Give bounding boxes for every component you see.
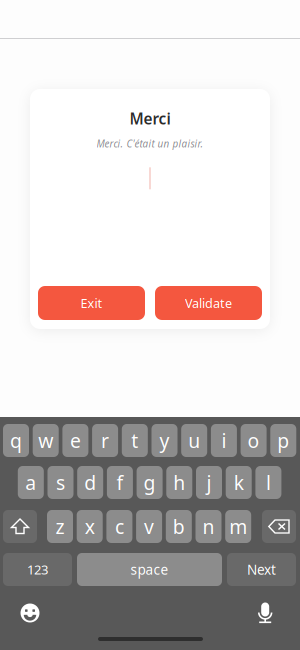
staticText: l <box>266 469 271 496</box>
staticText: 123 <box>27 561 48 578</box>
button[interactable]: Shift <box>3 510 37 543</box>
staticText: e <box>70 427 81 454</box>
button[interactable]: Emoji <box>10 598 50 628</box>
button[interactable]: o <box>241 424 267 457</box>
button[interactable]: t <box>122 424 148 457</box>
button[interactable]: e <box>62 424 88 457</box>
button[interactable]: a <box>18 466 44 499</box>
staticText: u <box>188 427 200 454</box>
button[interactable]: x <box>77 510 103 543</box>
button[interactable]: d <box>77 466 103 499</box>
staticText: k <box>234 469 244 496</box>
staticText: r <box>101 427 109 454</box>
staticText: space <box>130 560 168 579</box>
staticText: n <box>202 513 214 540</box>
button[interactable]: j <box>196 466 222 499</box>
button[interactable]: 123 <box>3 553 72 586</box>
staticText: m <box>229 513 247 540</box>
staticText: i <box>221 427 226 454</box>
button[interactable]: n <box>195 510 221 543</box>
staticText: c <box>115 513 124 540</box>
button[interactable]: p <box>270 424 296 457</box>
button[interactable]: h <box>166 466 192 499</box>
staticText: g <box>144 469 156 496</box>
staticText: Merci <box>129 108 170 129</box>
button[interactable]: Dictate <box>246 598 286 628</box>
button[interactable]: u <box>181 424 207 457</box>
button[interactable]: q <box>3 424 29 457</box>
button[interactable]: Validate <box>155 286 262 320</box>
button[interactable]: c <box>106 510 132 543</box>
staticText: Exit <box>80 294 102 312</box>
button[interactable]: s <box>47 466 73 499</box>
staticText: a <box>25 469 36 496</box>
staticText: Merci. C'était un plaisir. <box>96 137 203 150</box>
staticText: Validate <box>185 294 232 312</box>
button[interactable]: v <box>136 510 162 543</box>
button[interactable]: g <box>137 466 163 499</box>
staticText: d <box>84 469 96 496</box>
button[interactable]: Delete <box>262 510 296 543</box>
staticText: z <box>55 513 64 540</box>
button[interactable]: y <box>151 424 177 457</box>
button[interactable]: r <box>92 424 118 457</box>
staticText: q <box>10 427 22 454</box>
button[interactable]: Exit <box>38 286 145 320</box>
button[interactable]: i <box>211 424 237 457</box>
staticText: b <box>173 513 185 540</box>
staticText: x <box>85 513 95 540</box>
staticText: o <box>248 427 260 454</box>
button[interactable]: Next <box>227 553 296 586</box>
staticText: w <box>38 427 53 454</box>
button[interactable]: w <box>33 424 59 457</box>
button[interactable]: m <box>225 510 251 543</box>
button[interactable]: k <box>226 466 252 499</box>
button[interactable]: f <box>107 466 133 499</box>
button[interactable]: space <box>77 553 222 586</box>
staticText: t <box>131 427 138 454</box>
staticText: f <box>116 469 123 496</box>
staticText: h <box>173 469 185 496</box>
button[interactable]: z <box>47 510 73 543</box>
button[interactable]: b <box>166 510 192 543</box>
staticText: p <box>277 427 289 454</box>
staticText: j <box>206 469 211 496</box>
staticText: y <box>159 427 169 454</box>
staticText: Next <box>247 560 276 579</box>
staticText: v <box>144 513 154 540</box>
staticText: s <box>56 469 65 496</box>
button[interactable]: l <box>255 466 281 499</box>
